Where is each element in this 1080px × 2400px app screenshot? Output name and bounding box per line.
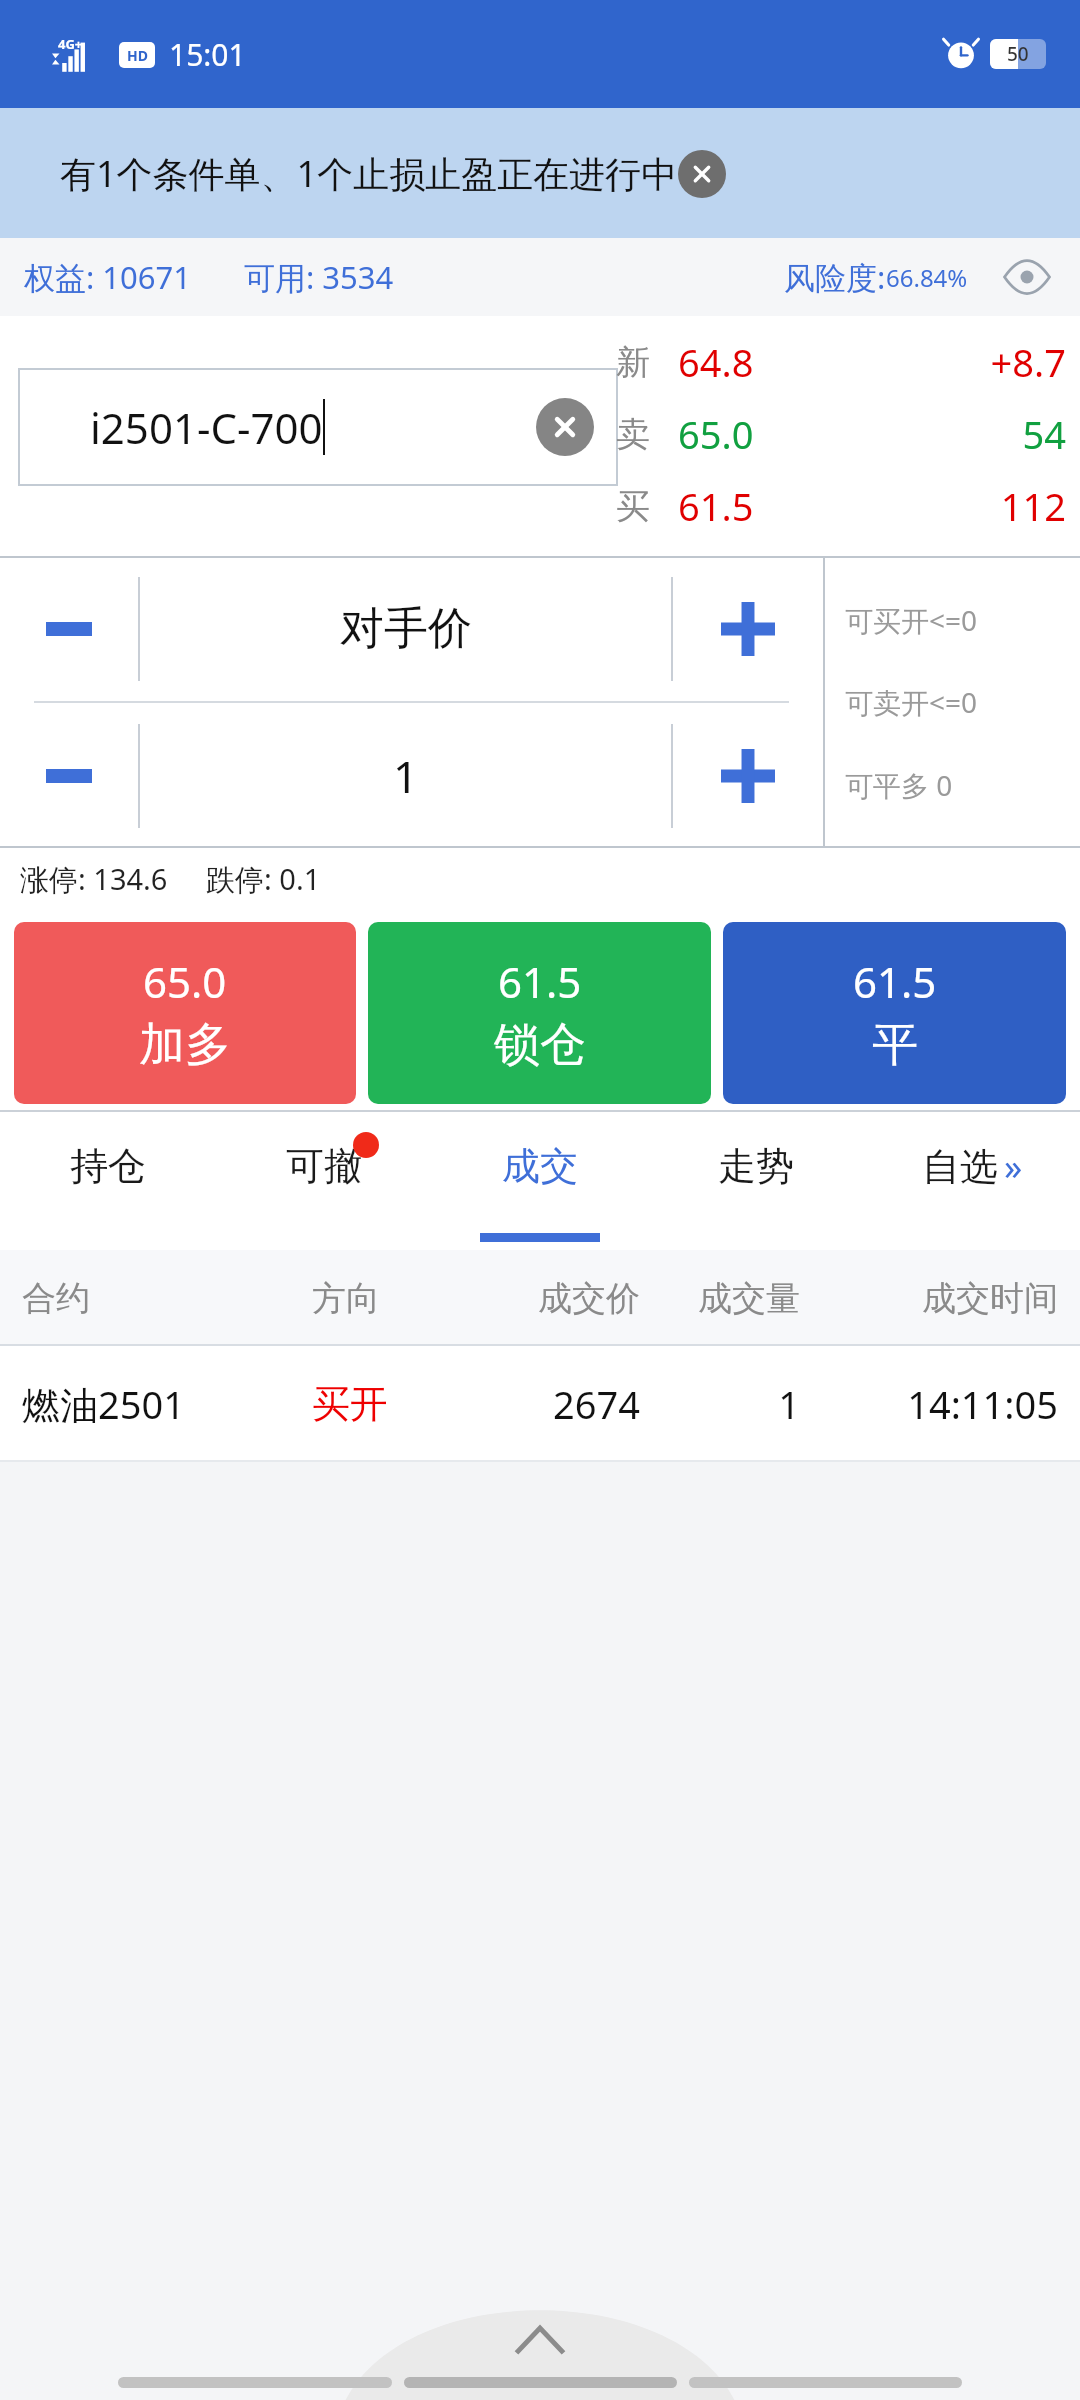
staticText: 可卖开<=0 [845, 683, 978, 721]
staticText: 54 [828, 408, 1066, 460]
staticText: 跌停: 0.1 [206, 859, 321, 899]
staticText: » [1004, 1142, 1023, 1191]
staticText: 买 [616, 485, 678, 528]
button[interactable]: 减少 [0, 556, 138, 701]
button[interactable]: 对手价 [140, 556, 671, 701]
button[interactable]: 显示/隐藏 [998, 248, 1056, 306]
button[interactable]: 增加 [673, 556, 823, 701]
staticText: 燃油2501 [22, 1378, 312, 1430]
staticText: 成交价 [480, 1277, 640, 1320]
staticText: 卖 [616, 413, 678, 456]
staticText: 持仓 [70, 1142, 146, 1190]
button[interactable]: 有1个条件单、1个止损止盈正在进行中 [0, 108, 1080, 238]
staticText: 可买开<=0 [845, 601, 978, 639]
staticText: 112 [828, 480, 1066, 532]
button[interactable]: 65.0 [14, 922, 356, 1104]
button[interactable]: 持仓 [0, 1110, 216, 1250]
button[interactable]: 自选 [864, 1110, 1080, 1250]
staticText: 风险度: [784, 256, 886, 298]
button[interactable]: 走势 [648, 1110, 864, 1250]
staticText: 65.0 [678, 408, 828, 460]
staticText: 对手价 [340, 601, 472, 656]
button[interactable]: 导航 [689, 2377, 962, 2388]
button[interactable]: 可用: 3534 [244, 256, 394, 298]
button[interactable]: 燃油2501 [0, 1346, 1080, 1462]
button[interactable]: 导航 [118, 2377, 392, 2388]
staticText: 1 [640, 1378, 800, 1430]
button[interactable]: 买 [616, 470, 1066, 542]
staticText: 可撤 [286, 1142, 362, 1190]
staticText: 1 [393, 746, 419, 806]
button[interactable]: i2501-C-700 [18, 368, 618, 486]
staticText: 平 [872, 1016, 918, 1074]
button[interactable]: 61.5 [723, 922, 1066, 1104]
button[interactable]: 1 [140, 703, 671, 848]
button[interactable]: 清除 [536, 398, 594, 456]
staticText: 65.0 [143, 953, 227, 1010]
staticText: 66.84% [886, 261, 968, 294]
staticText: 61.5 [853, 953, 937, 1010]
staticText: 成交 [502, 1142, 578, 1190]
button[interactable]: 增加 [673, 703, 823, 848]
button[interactable]: 权益: 10671 [24, 256, 192, 298]
staticText: 50 [1007, 41, 1029, 67]
staticText: 可平多 0 [845, 766, 953, 804]
staticText: 61.5 [498, 953, 582, 1010]
staticText: 合约 [22, 1277, 312, 1320]
staticText: 61.5 [678, 480, 828, 532]
staticText: 15:01 [169, 34, 246, 75]
button[interactable]: 可撤 [216, 1110, 432, 1250]
staticText: 成交量 [640, 1277, 800, 1320]
button[interactable]: 关闭 [678, 150, 726, 198]
button[interactable]: 减少 [0, 703, 138, 848]
staticText: 有1个条件单、1个止损止盈正在进行中 [60, 149, 678, 198]
staticText: 方向 [312, 1277, 480, 1320]
staticText: 锁仓 [494, 1016, 586, 1074]
button[interactable]: 卖 [616, 398, 1066, 470]
staticText: 2674 [480, 1378, 640, 1430]
staticText: +8.7 [828, 336, 1066, 388]
staticText: i2501-C-700 [90, 399, 323, 456]
staticText: 自选 [922, 1143, 998, 1191]
staticText: 走势 [718, 1142, 794, 1190]
staticText: 买开 [312, 1380, 480, 1428]
staticText: 64.8 [678, 336, 828, 388]
staticText: 4G+ [58, 35, 83, 53]
staticText: 涨停: 134.6 [20, 859, 168, 899]
staticText: 14:11:05 [800, 1378, 1058, 1430]
staticText: 成交时间 [800, 1277, 1058, 1320]
button[interactable]: 展开 [440, 2270, 640, 2400]
staticText: HD [127, 46, 148, 65]
staticText: 新 [616, 341, 678, 384]
button[interactable]: 新 [616, 326, 1066, 398]
button[interactable]: 61.5 [368, 922, 711, 1104]
staticText: 加多 [139, 1016, 231, 1074]
button[interactable]: 导航 [404, 2377, 677, 2388]
button[interactable]: 成交 [432, 1110, 648, 1250]
